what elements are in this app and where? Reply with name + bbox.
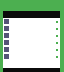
button[interactable] <box>3 53 60 60</box>
button[interactable] <box>3 39 60 46</box>
button[interactable] <box>3 32 60 39</box>
button[interactable] <box>3 18 60 25</box>
button[interactable] <box>3 25 60 32</box>
button[interactable] <box>3 46 60 53</box>
